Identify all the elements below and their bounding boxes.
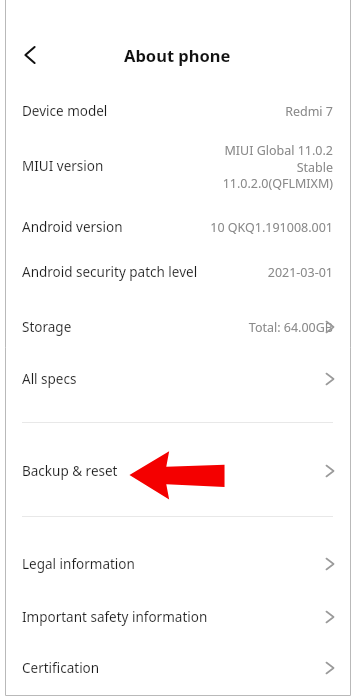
staticText: About phone [124,44,231,66]
button[interactable]: Back [12,37,48,73]
button[interactable] [6,136,350,198]
button[interactable] [6,594,350,640]
button[interactable] [6,203,350,247]
staticText: Android security patch level [22,263,198,281]
staticText: Redmi 7 [73,103,333,120]
button[interactable] [6,645,350,691]
button[interactable] [6,541,350,587]
staticText: MIUI Global 11.0.2 Stable 11.0.2.0(QFLMI… [73,142,333,190]
staticText: MIUI version [22,157,104,175]
staticText: Legal information [22,555,135,573]
staticText: Storage [22,318,72,336]
button[interactable] [6,88,350,134]
staticText: Device model [22,102,108,120]
button[interactable] [6,447,350,495]
staticText: 2021-03-01 [73,264,333,281]
button[interactable] [6,250,350,294]
staticText: Android version [22,218,123,236]
staticText: Certification [22,659,100,677]
staticText: 10 QKQ1.191008.001 [73,219,333,236]
button[interactable] [6,303,350,349]
staticText: Important safety information [22,608,208,626]
staticText: Backup & reset [22,462,118,480]
button[interactable] [6,355,350,401]
staticText: All specs [22,370,77,388]
staticText: Total: 64.00GB [73,319,333,336]
